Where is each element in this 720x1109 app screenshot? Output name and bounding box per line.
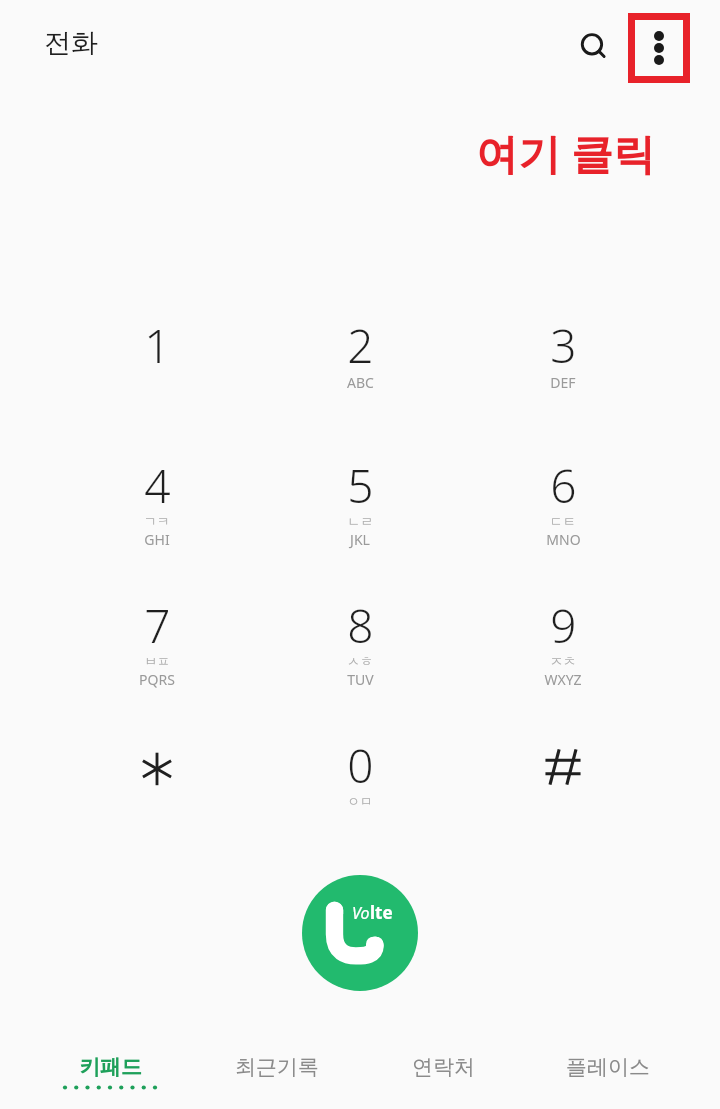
staticText: ㅅㅎ [347, 653, 373, 669]
staticText: 3 [550, 314, 577, 377]
button[interactable] [82, 728, 232, 858]
staticText: 7 [144, 594, 171, 657]
button[interactable]: 연락처 [368, 1040, 518, 1109]
staticText: ㄱㅋ [144, 513, 170, 529]
button[interactable]: 8 [285, 588, 435, 718]
staticText: 8 [347, 594, 374, 657]
staticText: ㅇㅁ [347, 793, 373, 809]
button[interactable]: 1 [82, 308, 232, 438]
staticText: 6 [550, 454, 577, 517]
button[interactable]: 전화 [44, 26, 98, 60]
staticText: JKL [350, 530, 370, 549]
staticText: 키패드 [79, 1054, 142, 1080]
button[interactable]: 6 [488, 448, 638, 578]
staticText: ABC [347, 373, 374, 392]
button[interactable]: 최근기록 [202, 1040, 352, 1109]
staticText: 여기 클릭 [476, 124, 655, 181]
button[interactable]: 0 [285, 728, 435, 858]
button[interactable]: 3 [488, 308, 638, 438]
staticText: 0 [347, 734, 374, 797]
button[interactable]: Search [566, 19, 622, 75]
staticText: DEF [550, 373, 576, 392]
staticText: 전화 [44, 26, 98, 60]
button[interactable] [488, 728, 638, 858]
staticText: 2 [347, 314, 374, 377]
button[interactable]: 플레이스 [533, 1040, 683, 1109]
staticText: 9 [550, 594, 577, 657]
staticText: 최근기록 [235, 1054, 319, 1080]
button[interactable]: 2 [285, 308, 435, 438]
staticText: lte [370, 901, 393, 924]
button[interactable]: 키패드 [35, 1040, 185, 1109]
staticText: ㅈㅊ [550, 653, 576, 669]
staticText: 플레이스 [566, 1054, 650, 1080]
staticText: 4 [144, 454, 171, 517]
button[interactable]: 5 [285, 448, 435, 578]
staticText: PQRS [139, 670, 175, 689]
button[interactable]: 4 [82, 448, 232, 578]
staticText: TUV [347, 670, 374, 689]
staticText: 1 [144, 314, 171, 377]
staticText: 5 [347, 454, 374, 517]
staticText: MNO [546, 530, 581, 549]
staticText: Vo [352, 902, 370, 924]
staticText: ㄷㅌ [550, 513, 576, 529]
staticText: ㄴㄹ [347, 513, 373, 529]
button[interactable]: 7 [82, 588, 232, 718]
button[interactable]: Call [302, 875, 418, 991]
staticText: WXYZ [544, 670, 582, 689]
staticText: GHI [144, 530, 170, 549]
button[interactable]: 9 [488, 588, 638, 718]
staticText: 연락처 [412, 1054, 475, 1080]
staticText: ㅂㅍ [144, 653, 170, 669]
button[interactable]: More options [628, 13, 690, 83]
